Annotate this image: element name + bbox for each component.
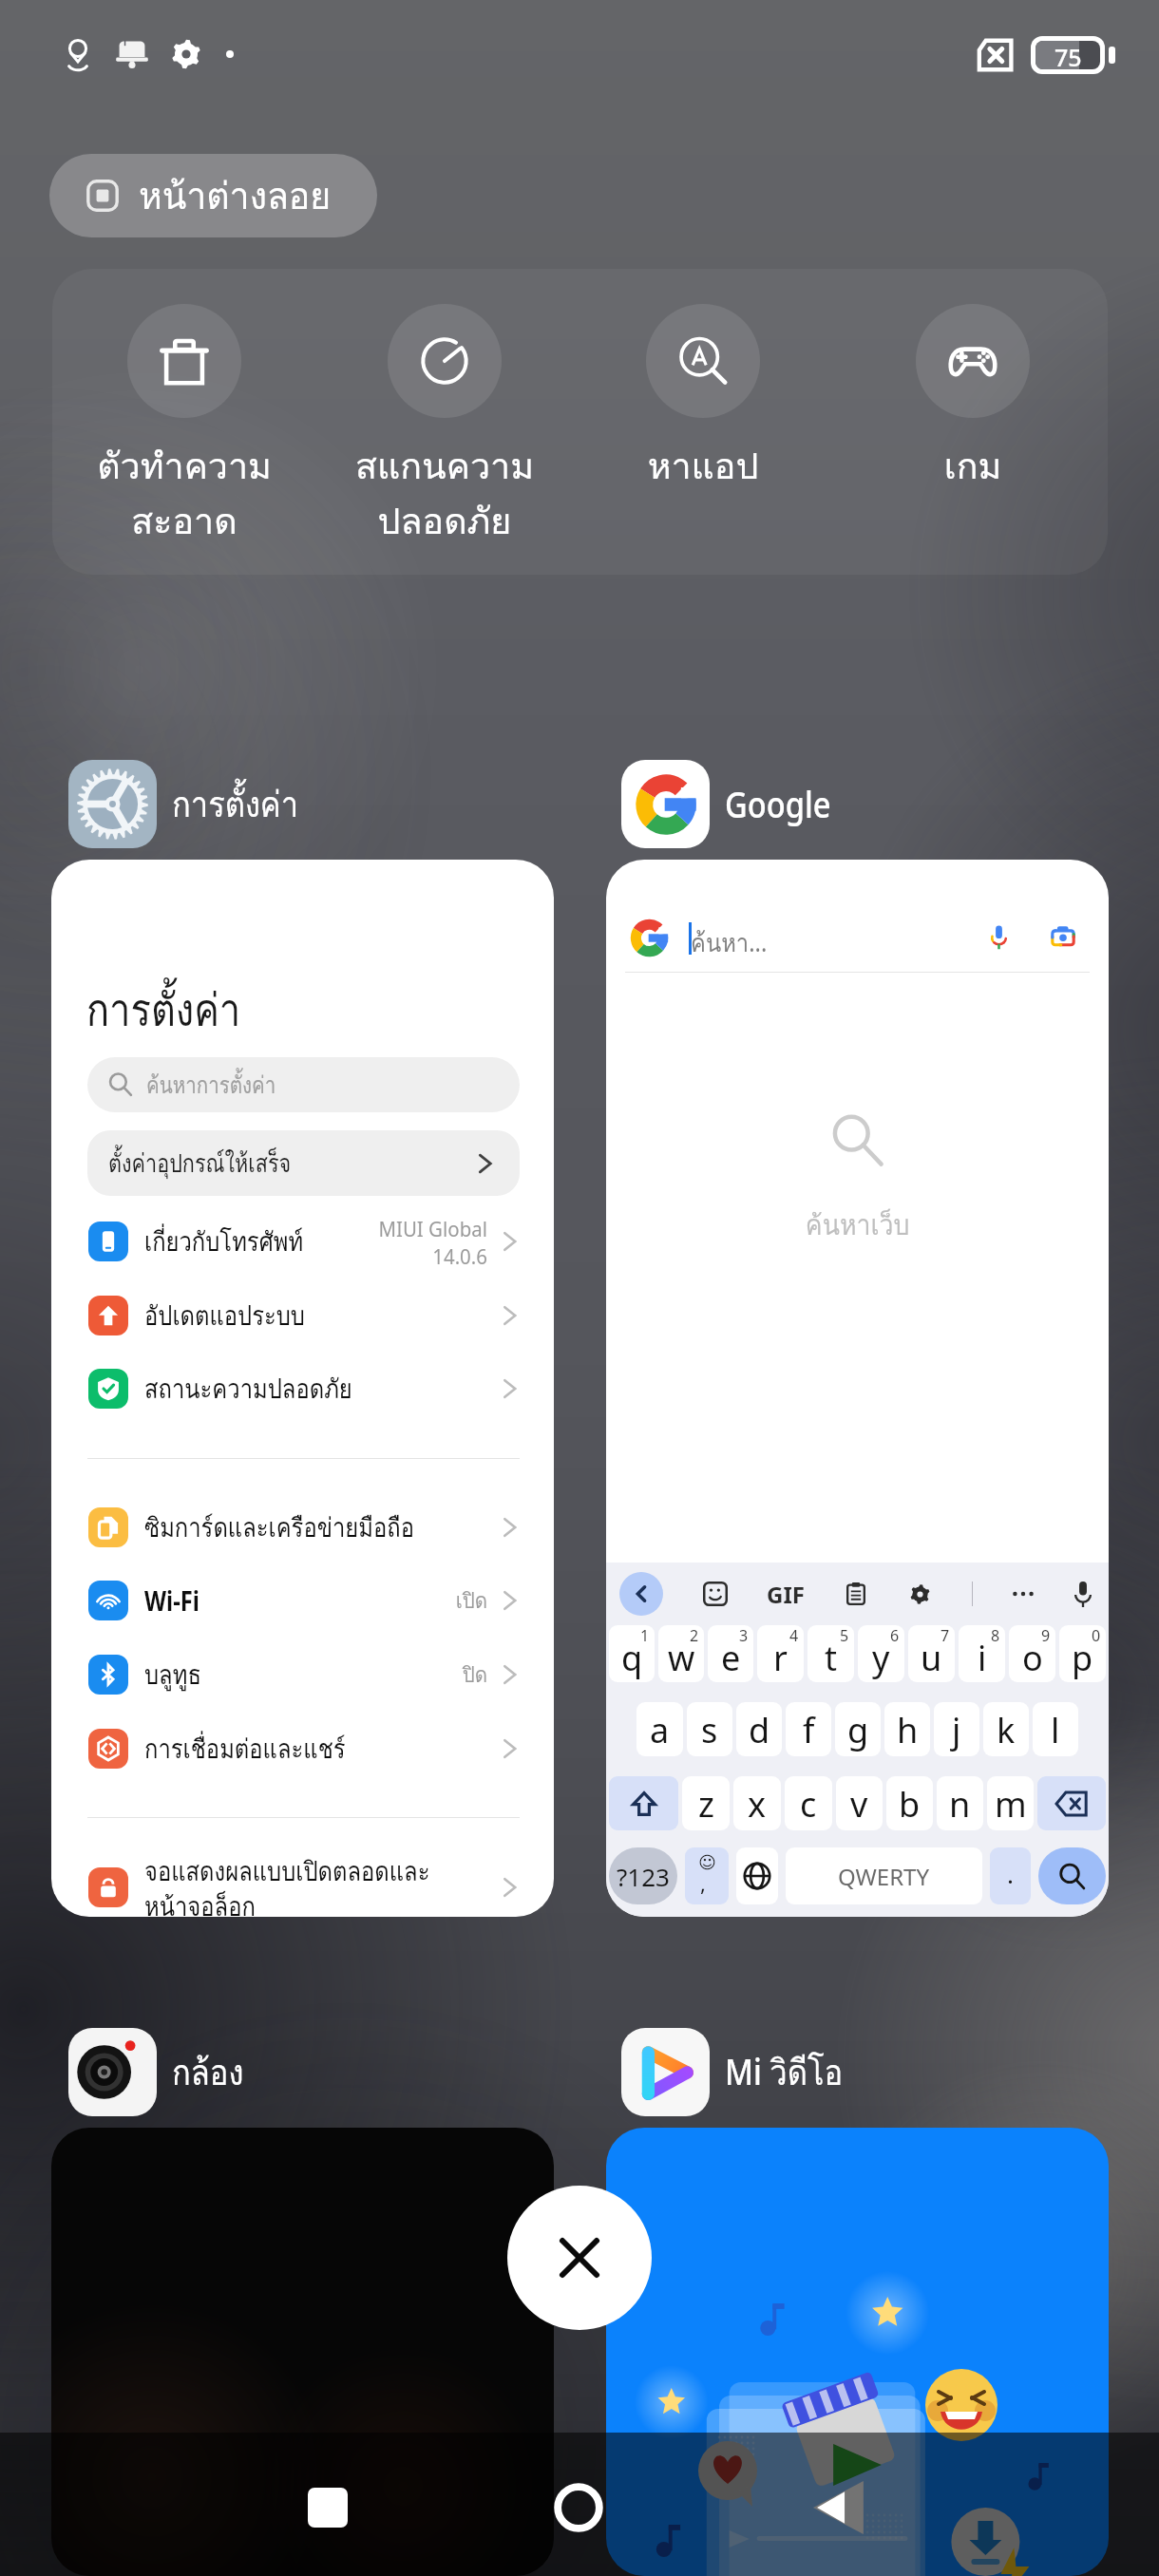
button[interactable]: z xyxy=(682,1776,730,1830)
staticText: l xyxy=(1051,1707,1060,1753)
staticText: c xyxy=(800,1781,817,1828)
button[interactable]: Home xyxy=(531,2460,626,2555)
staticText: ☺ xyxy=(698,1852,716,1872)
button[interactable]: Recents xyxy=(280,2460,375,2555)
button[interactable]: บลูทูธ xyxy=(51,1638,554,1712)
staticText: q xyxy=(621,1635,643,1681)
staticText: n xyxy=(949,1781,971,1828)
button[interactable]: 0 xyxy=(1059,1625,1106,1682)
staticText: 9 xyxy=(1041,1625,1051,1646)
button[interactable]: v xyxy=(836,1776,883,1830)
staticText: ค้นหาเว็บ xyxy=(805,1203,910,1247)
staticText: p xyxy=(1072,1635,1093,1681)
button[interactable]: QWERTY xyxy=(786,1847,982,1904)
button[interactable]: Back xyxy=(784,2460,879,2555)
staticText: บลูทูธ xyxy=(144,1654,412,1696)
staticText: เปิด xyxy=(456,1584,487,1618)
button[interactable]: s xyxy=(687,1702,732,1756)
button[interactable]: ค้นหา... xyxy=(606,860,1109,1917)
staticText: o xyxy=(1022,1635,1043,1681)
staticText: v xyxy=(850,1781,868,1828)
staticText: u xyxy=(921,1635,942,1681)
staticText: ค้นหาการตั้งค่า xyxy=(146,1066,276,1104)
button[interactable]: หาแอป xyxy=(584,304,822,494)
staticText: ค้นหา... xyxy=(691,922,768,963)
button[interactable]: ตัวทำความ สะอาด xyxy=(66,304,303,550)
button[interactable]: h xyxy=(884,1702,930,1756)
button[interactable]: 2 xyxy=(658,1625,704,1682)
button[interactable]: Clear all xyxy=(507,2186,652,2330)
button[interactable]: g xyxy=(835,1702,881,1756)
staticText: . xyxy=(1007,1857,1014,1890)
staticText: 5 xyxy=(840,1625,849,1646)
button[interactable]: 3 xyxy=(708,1625,753,1682)
staticText: หน้าต่างลอย xyxy=(139,166,331,225)
button[interactable]: ค้นหาการตั้งค่า xyxy=(87,1057,520,1112)
button[interactable]: จอแสดงผลแบบเปิดตลอดและ หน้าจอล็อก xyxy=(51,1850,554,1917)
button[interactable]: สถานะความปลอดภัย xyxy=(51,1352,554,1426)
staticText: หาแอป xyxy=(648,437,758,494)
button[interactable]: x xyxy=(733,1776,781,1830)
button[interactable]: Search xyxy=(1038,1847,1106,1904)
button[interactable]: 1 xyxy=(609,1625,655,1682)
staticText: ปิด xyxy=(462,1658,487,1692)
staticText: อัปเดตแอประบบ xyxy=(144,1295,444,1337)
staticText: h xyxy=(897,1707,919,1753)
button[interactable]: ตั้งค่าอุปกรณ์ให้เสร็จ xyxy=(87,1130,520,1196)
staticText: d xyxy=(749,1707,770,1753)
staticText: สถานะความปลอดภัย xyxy=(144,1368,444,1411)
button[interactable]: d xyxy=(736,1702,782,1756)
staticText: ซิมการ์ดและเครือข่ายมือถือ xyxy=(144,1506,444,1549)
button[interactable]: k xyxy=(983,1702,1029,1756)
button[interactable]: 9 xyxy=(1009,1625,1055,1682)
button[interactable]: Emoji xyxy=(685,1847,729,1904)
staticText: g xyxy=(847,1707,869,1753)
staticText: t xyxy=(825,1635,837,1681)
button[interactable]: การตั้งค่า xyxy=(51,860,554,1917)
staticText: f xyxy=(803,1707,815,1753)
button[interactable]: . xyxy=(990,1847,1031,1904)
button[interactable]: Backspace xyxy=(1037,1776,1106,1830)
button[interactable]: l xyxy=(1033,1702,1078,1756)
staticText: y xyxy=(872,1635,890,1681)
staticText: ตั้งค่าอุปกรณ์ให้เสร็จ xyxy=(108,1143,291,1184)
button[interactable]: อัปเดตแอประบบ xyxy=(51,1279,554,1353)
button[interactable]: เกี่ยวกับโทรศัพท์ xyxy=(51,1204,554,1279)
button[interactable]: n xyxy=(937,1776,983,1830)
button[interactable]: 5 xyxy=(807,1625,854,1682)
button[interactable]: Language xyxy=(736,1847,778,1904)
button[interactable]: a xyxy=(636,1702,683,1756)
button[interactable]: ?123 xyxy=(609,1847,677,1904)
staticText: การตั้งค่า xyxy=(172,775,299,832)
button[interactable]: สแกนความ ปลอดภัย xyxy=(326,304,563,550)
button[interactable]: หน้าต่างลอย xyxy=(49,154,377,237)
button[interactable]: ซิมการ์ดและเครือข่ายมือถือ xyxy=(51,1490,554,1564)
button[interactable]: m xyxy=(987,1776,1034,1830)
staticText: เกี่ยวกับโทรศัพท์ xyxy=(144,1221,336,1263)
button[interactable]: b xyxy=(886,1776,933,1830)
staticText: Wi-Fi xyxy=(144,1582,407,1619)
button[interactable]: 8 xyxy=(959,1625,1005,1682)
staticText: s xyxy=(701,1707,718,1753)
button[interactable]: Back xyxy=(619,1572,663,1616)
staticText: 1 xyxy=(640,1625,650,1646)
button[interactable] xyxy=(51,2128,554,2576)
staticText: ?123 xyxy=(617,1860,670,1893)
staticText: Mi วิดีโอ xyxy=(725,2043,843,2100)
staticText: a xyxy=(650,1707,670,1753)
button[interactable]: j xyxy=(934,1702,979,1756)
button[interactable] xyxy=(606,2128,1109,2576)
staticText: 0 xyxy=(1092,1625,1101,1646)
button[interactable]: 4 xyxy=(757,1625,804,1682)
button[interactable]: 7 xyxy=(908,1625,955,1682)
staticText: 4 xyxy=(789,1625,799,1646)
staticText: m xyxy=(995,1781,1027,1828)
button[interactable]: Wi-Fi xyxy=(51,1563,554,1638)
staticText: 75 xyxy=(1054,41,1082,69)
button[interactable]: เกม xyxy=(854,304,1092,494)
button[interactable]: c xyxy=(785,1776,832,1830)
button[interactable]: 6 xyxy=(858,1625,904,1682)
button[interactable]: การเชื่อมต่อและแชร์ xyxy=(51,1712,554,1786)
button[interactable]: Shift xyxy=(609,1776,678,1830)
button[interactable]: f xyxy=(786,1702,831,1756)
